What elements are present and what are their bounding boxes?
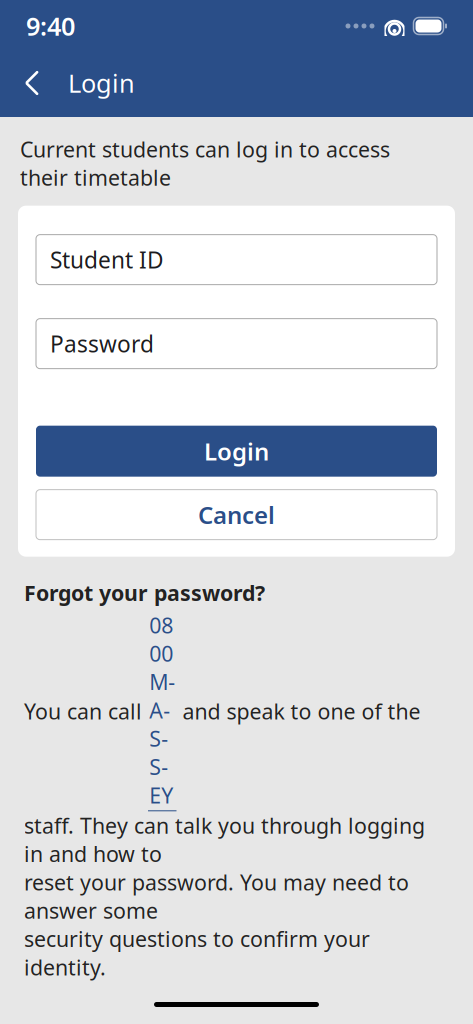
staticText: Forgot your password? bbox=[24, 579, 265, 607]
staticText: and speak to one of the bbox=[176, 697, 420, 725]
button[interactable]: Login bbox=[36, 426, 437, 477]
staticText: staff. They can talk you through logging… bbox=[24, 811, 425, 868]
button[interactable]: Student ID bbox=[36, 235, 437, 285]
staticText: Login bbox=[204, 435, 269, 467]
staticText: 9:40 bbox=[26, 9, 75, 43]
button[interactable]: Back bbox=[10, 61, 54, 105]
staticText: Student ID bbox=[50, 245, 164, 275]
staticText: Current students can log in to access th… bbox=[20, 135, 390, 192]
staticText: 0800 MASSEY bbox=[149, 611, 175, 809]
button[interactable]: Password bbox=[36, 319, 437, 369]
button[interactable]: Cancel bbox=[36, 490, 437, 540]
staticText: Password bbox=[50, 329, 154, 359]
button[interactable]: 0800 MASSEY bbox=[148, 611, 176, 811]
staticText: reset your password. You may need to ans… bbox=[24, 868, 409, 925]
staticText: Login bbox=[68, 66, 135, 100]
staticText: security questions to confirm your ident… bbox=[24, 925, 370, 981]
staticText: You can call bbox=[24, 697, 148, 725]
staticText: Cancel bbox=[198, 499, 275, 531]
